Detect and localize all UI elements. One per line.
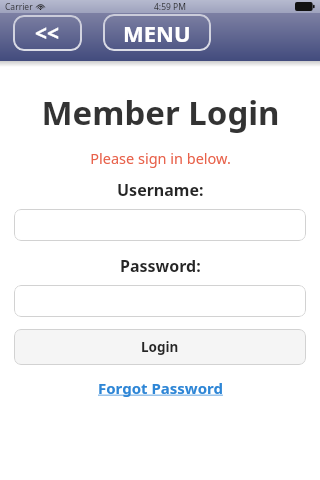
button[interactable] (14, 285, 306, 317)
button[interactable]: Back (13, 15, 82, 51)
staticText: Carrier (5, 1, 33, 13)
staticText: 4:59 PM (154, 1, 186, 13)
staticText: Username: (117, 179, 204, 201)
button[interactable]: Login (14, 329, 306, 365)
button[interactable]: MENU (103, 14, 211, 51)
staticText: Forgot Password (98, 378, 223, 398)
staticText: Login (141, 338, 179, 356)
staticText: Password: (120, 255, 201, 277)
button[interactable]: Forgot Password (94, 377, 227, 399)
staticText: Please sign in below. (90, 148, 231, 168)
staticText: Member Login (41, 90, 280, 135)
button[interactable] (14, 209, 306, 241)
staticText: MENU (123, 18, 191, 48)
staticText: << (35, 19, 60, 48)
